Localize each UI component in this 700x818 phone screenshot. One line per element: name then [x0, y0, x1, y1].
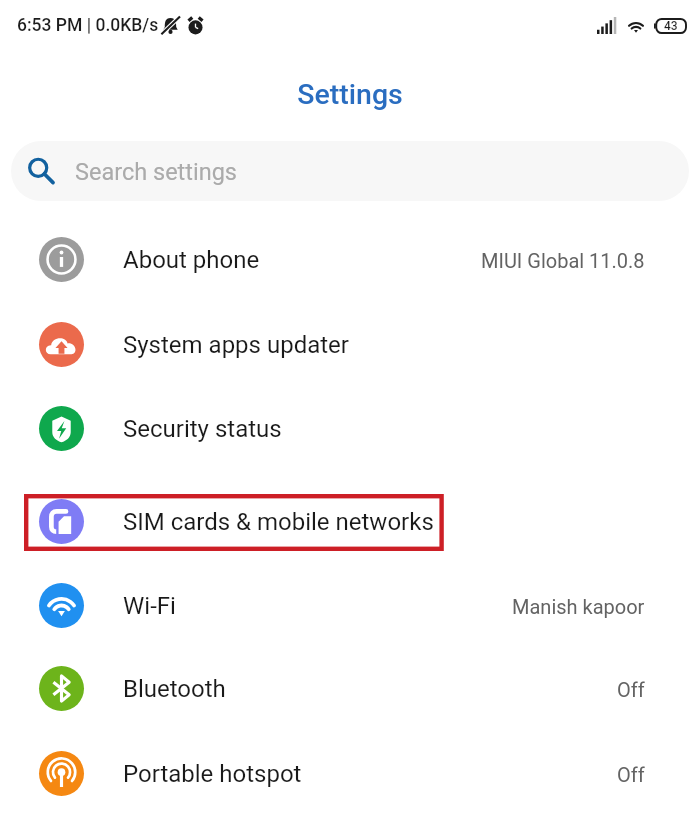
- staticText: System apps updater: [123, 331, 349, 359]
- staticText: Bluetooth: [123, 675, 226, 703]
- other: Silent mode on: [161, 16, 180, 35]
- staticText: Search settings: [75, 158, 237, 186]
- other: Wi-Fi connected: [626, 18, 646, 33]
- other: Search: [27, 157, 55, 185]
- staticText: 43: [664, 19, 678, 33]
- button[interactable]: Security status: [0, 386, 700, 470]
- button[interactable]: Portable hotspot: [0, 731, 700, 815]
- staticText: 6:53 PM | 0.0KB/s: [17, 15, 159, 36]
- button[interactable]: System apps updater: [0, 302, 700, 386]
- staticText: Security status: [123, 415, 282, 443]
- staticText: Off: [617, 678, 645, 701]
- button[interactable]: Wi-Fi: [0, 563, 700, 647]
- button[interactable]: Bluetooth: [0, 646, 700, 730]
- staticText: SIM cards & mobile networks: [123, 508, 434, 536]
- button[interactable]: SIM cards & mobile networks: [0, 479, 700, 563]
- staticText: MIUI Global 11.0.8: [481, 249, 645, 272]
- other: Alarm set: [186, 16, 205, 35]
- staticText: About phone: [123, 246, 260, 274]
- button[interactable]: About phone: [0, 217, 700, 301]
- staticText: Off: [617, 763, 645, 786]
- staticText: Wi-Fi: [123, 592, 176, 620]
- staticText: Settings: [297, 78, 403, 111]
- other: Mobile signal strength: [597, 17, 617, 34]
- staticText: Portable hotspot: [123, 760, 302, 788]
- staticText: Manish kapoor: [512, 595, 645, 618]
- other: Battery 43 percent: [654, 18, 686, 34]
- button[interactable]: Search: [11, 141, 689, 201]
